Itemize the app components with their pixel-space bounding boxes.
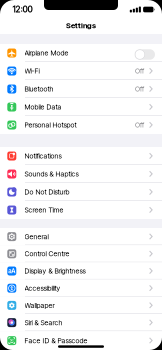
- button[interactable]: Screen Time: [0, 201, 162, 219]
- button[interactable]: Siri & Search: [0, 314, 162, 331]
- staticText: Airplane Mode: [24, 49, 68, 57]
- staticText: Screen Time: [24, 206, 63, 214]
- button[interactable]: Control Centre: [0, 245, 162, 262]
- button[interactable]: General: [0, 228, 162, 245]
- button[interactable]: aA: [0, 262, 162, 280]
- button[interactable]: Personal Hotspot: [0, 116, 162, 134]
- button[interactable]: Notifications: [0, 147, 162, 165]
- button[interactable]: Wi-Fi: [0, 62, 162, 80]
- staticText: aA: [8, 267, 15, 275]
- button[interactable]: Do Not Disturb: [0, 183, 162, 201]
- button[interactable]: Accessibility: [0, 280, 162, 297]
- staticText: Wi-Fi: [24, 67, 39, 75]
- staticText: Display & Brightness: [24, 267, 85, 275]
- staticText: 12:00: [12, 4, 32, 15]
- button[interactable]: Face ID & Passcode: [0, 331, 162, 350]
- staticText: Bluetooth: [24, 85, 53, 93]
- staticText: General: [24, 232, 48, 241]
- staticText: Personal Hotspot: [24, 121, 76, 129]
- staticText: Accessibility: [24, 284, 60, 292]
- button[interactable]: Airplane Mode: [134, 49, 155, 60]
- staticText: Face ID & Passcode: [24, 336, 87, 345]
- staticText: Siri & Search: [24, 318, 62, 327]
- staticText: Do Not Disturb: [24, 188, 69, 196]
- staticText: Off: [135, 121, 144, 129]
- button[interactable]: Wallpaper: [0, 297, 162, 314]
- button[interactable]: Sounds & Haptics: [0, 165, 162, 183]
- staticText: Off: [135, 67, 144, 75]
- staticText: Control Centre: [24, 249, 69, 258]
- staticText: Notifications: [24, 152, 61, 160]
- staticText: Sounds & Haptics: [24, 170, 78, 178]
- staticText: Off: [135, 85, 144, 93]
- staticText: Mobile Data: [24, 103, 61, 111]
- button[interactable]: Mobile Data: [0, 98, 162, 116]
- button[interactable]: Bluetooth: [0, 80, 162, 98]
- staticText: Wallpaper: [24, 301, 54, 310]
- staticText: Settings: [66, 21, 96, 30]
